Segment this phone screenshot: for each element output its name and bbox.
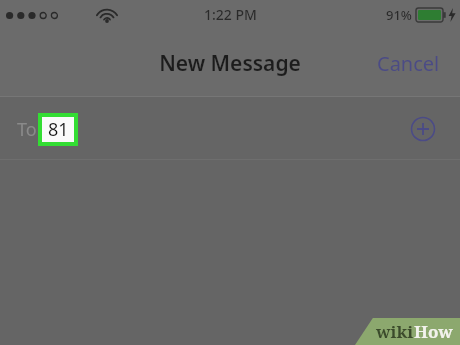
staticText: 1:22 PM xyxy=(204,5,257,24)
staticText: To xyxy=(17,117,37,142)
staticText: Cancel xyxy=(377,50,440,77)
staticText: How xyxy=(414,320,453,343)
staticText: 91% xyxy=(386,6,412,24)
button[interactable]: 81 xyxy=(42,117,74,142)
button[interactable]: Add contact xyxy=(407,113,439,145)
staticText: wiki xyxy=(376,320,414,343)
staticText: 81 xyxy=(48,117,69,142)
button[interactable]: Cancel xyxy=(357,38,460,89)
staticText: New Message xyxy=(159,49,301,78)
